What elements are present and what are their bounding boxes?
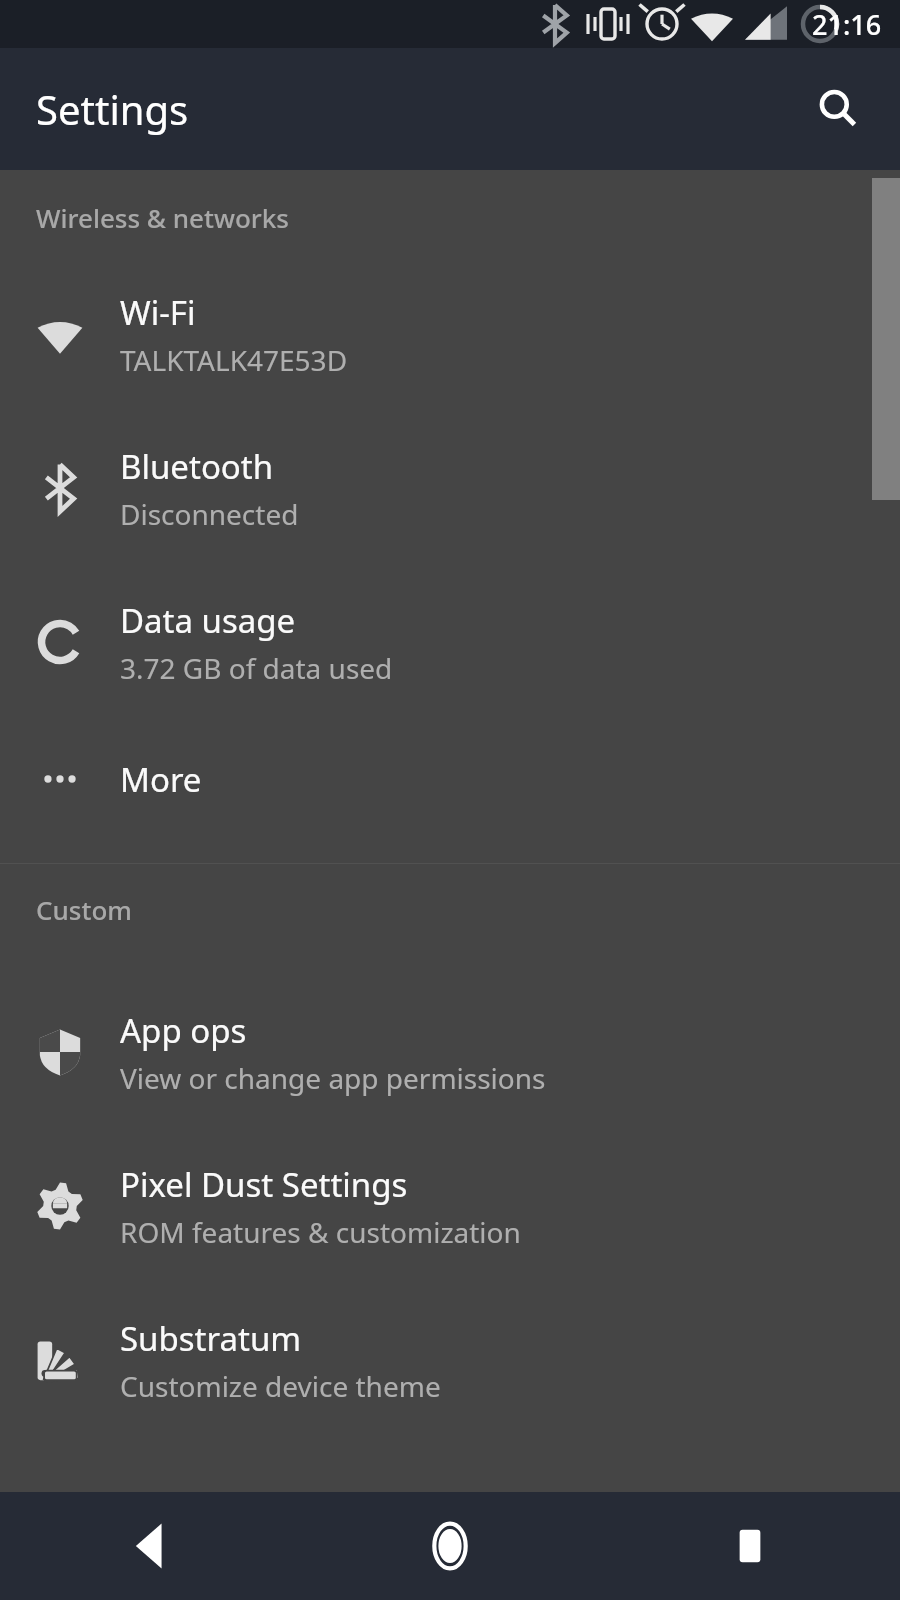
staticText: Disconnected (120, 495, 299, 533)
staticText: Data usage (120, 598, 296, 643)
staticText: 21:16 (812, 6, 882, 43)
button[interactable]: Back (0, 1492, 300, 1600)
staticText: Bluetooth (120, 444, 274, 489)
staticText: ROM features & customization (120, 1213, 521, 1251)
button[interactable]: Substratum (0, 1283, 900, 1437)
staticText: Settings (36, 82, 189, 136)
button[interactable]: Search (798, 69, 878, 149)
staticText: Wireless & networks (36, 200, 290, 235)
staticText: Substratum (120, 1316, 302, 1361)
staticText: Customize device theme (120, 1367, 441, 1405)
button[interactable]: Home (300, 1492, 600, 1600)
staticText: TALKTALK47E53D (120, 341, 348, 379)
staticText: Wi-Fi (120, 290, 196, 335)
button[interactable]: App ops (0, 975, 900, 1129)
button[interactable]: More (0, 719, 900, 839)
staticText: More (120, 757, 202, 802)
button[interactable]: Pixel Dust Settings (0, 1129, 900, 1283)
staticText: Custom (36, 892, 132, 927)
button[interactable]: Recent apps (600, 1492, 900, 1600)
button[interactable]: Bluetooth (0, 411, 900, 565)
staticText: 3.72 GB of data used (120, 649, 393, 687)
button[interactable]: Wi-Fi (0, 257, 900, 411)
button[interactable]: Data usage (0, 565, 900, 719)
staticText: App ops (120, 1008, 247, 1053)
staticText: Pixel Dust Settings (120, 1162, 408, 1207)
staticText: View or change app permissions (120, 1059, 546, 1097)
